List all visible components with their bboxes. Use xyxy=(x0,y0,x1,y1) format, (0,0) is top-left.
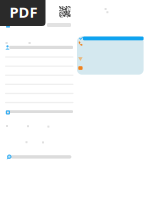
staticText: PDF xyxy=(10,2,38,22)
button[interactable]: PDF xyxy=(0,0,45,26)
